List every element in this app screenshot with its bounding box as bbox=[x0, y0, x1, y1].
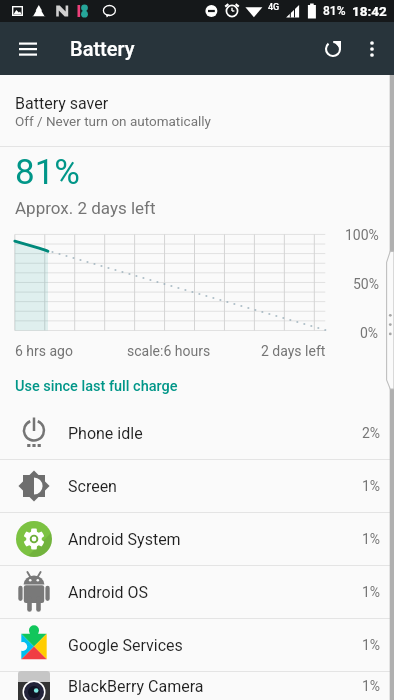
button[interactable]: Use since last full charge bbox=[0, 370, 394, 402]
staticText: 2 days left bbox=[261, 343, 326, 359]
staticText: 1% bbox=[362, 584, 381, 600]
staticText: 6 hrs ago bbox=[15, 343, 73, 359]
staticText: Android System bbox=[68, 530, 181, 549]
staticText: 1% bbox=[362, 637, 381, 653]
staticText: Screen bbox=[68, 477, 117, 496]
staticText: Phone idle bbox=[68, 424, 143, 443]
button[interactable]: Phone idle bbox=[0, 407, 394, 459]
staticText: 81% bbox=[15, 152, 80, 193]
staticText: 0% bbox=[360, 325, 379, 341]
staticText: 1% bbox=[362, 478, 381, 494]
staticText: 81% bbox=[323, 4, 346, 18]
staticText: BlackBerry Camera bbox=[68, 677, 204, 696]
staticText: 1% bbox=[362, 678, 381, 694]
button[interactable]: Screen bbox=[0, 460, 394, 512]
staticText: Android OS bbox=[68, 583, 149, 602]
button[interactable]: Google Services bbox=[0, 619, 394, 671]
button[interactable]: More options bbox=[352, 29, 392, 69]
staticText: 100% bbox=[345, 227, 379, 243]
staticText: scale:6 hours bbox=[127, 343, 211, 359]
staticText: 18:42 bbox=[352, 3, 387, 19]
staticText: Battery saver bbox=[15, 94, 109, 113]
staticText: 2% bbox=[362, 425, 381, 441]
staticText: Google Services bbox=[68, 636, 183, 655]
button[interactable]: Battery saver bbox=[0, 75, 394, 146]
staticText: Approx. 2 days left bbox=[15, 198, 156, 218]
staticText: 50% bbox=[353, 276, 379, 292]
button[interactable]: Refresh bbox=[313, 29, 353, 69]
staticText: Use since last full charge bbox=[15, 378, 178, 395]
staticText: 4G bbox=[268, 2, 280, 13]
button[interactable]: Open navigation drawer bbox=[8, 29, 48, 69]
staticText: 1% bbox=[362, 531, 381, 547]
staticText: Battery bbox=[70, 37, 135, 60]
button[interactable]: Android System bbox=[0, 513, 394, 565]
button[interactable]: BlackBerry Camera bbox=[0, 672, 394, 700]
button[interactable]: Android OS bbox=[0, 566, 394, 618]
staticText: Off / Never turn on automatically bbox=[15, 113, 211, 129]
